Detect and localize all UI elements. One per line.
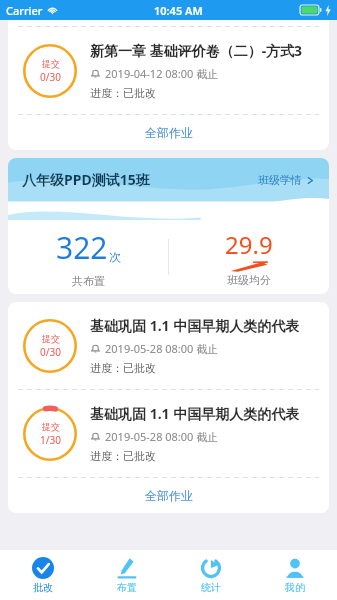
- staticText: 提交: [42, 421, 60, 432]
- staticText: 提交: [42, 58, 60, 69]
- button[interactable]: 提交: [8, 302, 329, 389]
- button[interactable]: 班级学情: [258, 173, 315, 187]
- staticText: 统计: [201, 581, 221, 594]
- staticText: 进度：已批改: [90, 449, 156, 463]
- staticText: 2019-05-28 08:00 截止: [105, 429, 219, 444]
- staticText: Carrier: [6, 3, 43, 18]
- button[interactable]: 全部作业: [8, 115, 329, 150]
- button[interactable]: 全部作业: [8, 478, 329, 513]
- staticText: 班级学情: [258, 173, 302, 187]
- staticText: 1/30: [40, 433, 61, 447]
- staticText: 批改: [33, 581, 53, 594]
- staticText: 0/30: [40, 70, 61, 84]
- staticText: 进度：已批改: [90, 361, 156, 375]
- staticText: 322: [56, 227, 108, 268]
- button[interactable]: 批改: [0, 550, 85, 600]
- staticText: 次: [109, 249, 121, 264]
- staticText: 新第一章 基础评价卷（二）-方式3: [90, 41, 303, 60]
- staticText: 2019-04-12 08:00 截止: [105, 66, 219, 81]
- staticText: 布置: [117, 581, 137, 594]
- staticText: 班级均分: [227, 273, 271, 287]
- button[interactable]: 提交: [8, 27, 329, 114]
- staticText: 29.9: [225, 228, 273, 261]
- staticText: 进度：已批改: [90, 86, 156, 100]
- staticText: 2019-05-28 08:00 截止: [105, 341, 219, 356]
- staticText: 基础巩固 1.1 中国早期人类的代表——: [90, 316, 317, 335]
- staticText: 10:45 AM: [154, 3, 203, 18]
- staticText: 提交: [42, 333, 60, 344]
- staticText: 全部作业: [145, 488, 193, 503]
- staticText: 0/30: [40, 345, 61, 359]
- button[interactable]: 布置: [85, 550, 169, 600]
- staticText: 基础巩固 1.1 中国早期人类的代表——: [90, 404, 317, 423]
- button[interactable]: 统计: [169, 550, 253, 600]
- staticText: 八年级PPD测试15班: [22, 170, 150, 189]
- staticText: 我的: [285, 581, 305, 594]
- staticText: 全部作业: [145, 125, 193, 140]
- button[interactable]: 提交: [8, 390, 329, 477]
- staticText: 共布置: [72, 274, 105, 288]
- button[interactable]: 我的: [253, 550, 337, 600]
